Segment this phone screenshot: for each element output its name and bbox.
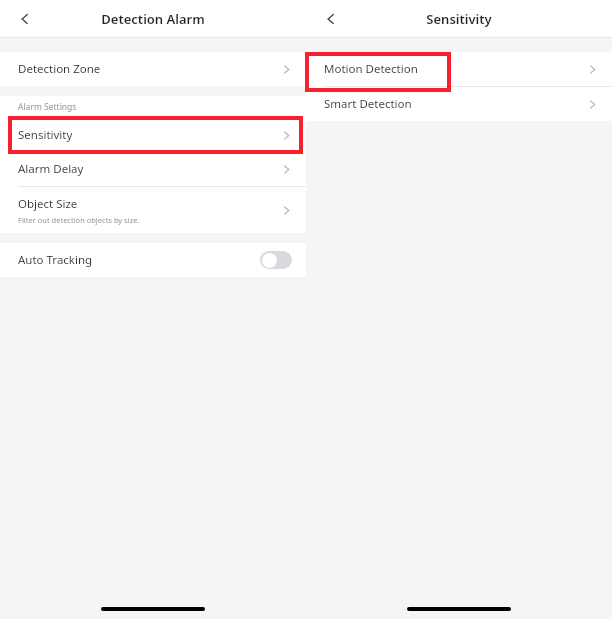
button[interactable]: Alarm Delay (0, 152, 306, 186)
staticText: Filter out detection objects by size. (18, 215, 140, 225)
button[interactable]: Back (10, 4, 40, 34)
staticText: Motion Detection (324, 61, 418, 77)
staticText: Sensitivity (426, 10, 492, 28)
button[interactable]: Auto Tracking (0, 243, 306, 277)
staticText: Object Size (18, 196, 78, 212)
button[interactable]: Object Size (0, 187, 306, 233)
staticText: Auto Tracking (18, 252, 260, 268)
button[interactable]: Smart Detection (306, 87, 612, 121)
staticText: Alarm Delay (18, 161, 84, 177)
staticText: Sensitivity (18, 127, 73, 143)
button[interactable]: Motion Detection (306, 52, 612, 86)
button[interactable]: Back (316, 4, 346, 34)
staticText: Detection Alarm (101, 10, 205, 28)
staticText: Detection Zone (18, 61, 101, 77)
button[interactable]: Detection Zone (0, 52, 306, 86)
staticText: Smart Detection (324, 96, 412, 112)
button[interactable]: Sensitivity (0, 118, 306, 152)
button[interactable]: Auto Tracking toggle (260, 251, 292, 269)
staticText: Alarm Settings (18, 101, 77, 113)
